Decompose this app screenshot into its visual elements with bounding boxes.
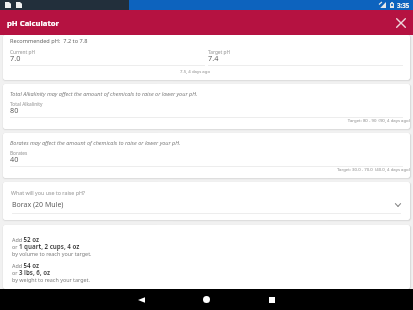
staticText: Target: 80 - 90 (90, 4 days ago)	[17, 117, 410, 123]
staticText: 80	[10, 105, 19, 115]
staticText: pH Calculator	[7, 18, 60, 28]
button[interactable]: Recent apps	[261, 289, 282, 310]
staticText: by weight to reach your target.	[12, 276, 90, 283]
staticText: Borates may affect the amount of chemica…	[10, 139, 181, 146]
staticText: 40	[10, 154, 19, 164]
staticText: Add 54 oz	[12, 261, 40, 269]
staticText: 7.4	[208, 53, 403, 63]
button[interactable]: Back	[131, 289, 152, 310]
staticText: Total Alkalinity	[10, 101, 43, 108]
button[interactable]: What will you use to raise pH?	[3, 182, 410, 220]
staticText: 7.5, 4 days ago	[15, 68, 210, 74]
staticText: Add 52 oz	[12, 235, 40, 243]
button[interactable]: Close	[392, 14, 410, 32]
staticText: or 3 lbs, 6, oz	[12, 268, 51, 276]
staticText: Target pH	[208, 49, 403, 56]
staticText: 7.0	[10, 53, 205, 63]
staticText: by volume to reach your target.	[12, 250, 92, 257]
staticText: Borates	[10, 150, 28, 157]
button[interactable]: Home	[196, 289, 217, 310]
staticText: or 1 quart, 2 cups, 4 oz	[12, 242, 80, 250]
staticText: Recommended pH: 7.2 to 7.8	[10, 37, 88, 45]
staticText: Current pH	[10, 49, 205, 56]
button[interactable]: pH Calculator	[0, 10, 413, 35]
staticText: Target: 30.0 - 70.0 (40.0, 4 days ago)	[17, 166, 410, 172]
staticText: 3:35	[397, 1, 410, 9]
staticText: Total Alkalinity may affect the amount o…	[10, 90, 198, 97]
staticText: What will you use to raise pH?	[11, 189, 86, 196]
staticText: Borax (20 Mule)	[12, 200, 395, 210]
